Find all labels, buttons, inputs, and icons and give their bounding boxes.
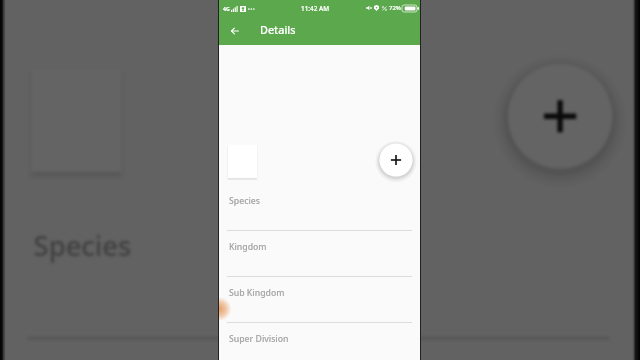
staticText: Super Division [229,333,289,345]
button[interactable]: Add [374,138,418,182]
button[interactable]: Species [219,188,420,234]
button[interactable]: Kingdom [219,234,420,280]
button[interactable]: Kingdom [3,349,635,360]
button[interactable]: Add [491,47,630,186]
staticText: Species [34,227,132,264]
staticText: Details [260,22,296,37]
button[interactable]: Back [223,19,247,43]
staticText: 72% [389,4,401,12]
button[interactable]: Sub Kingdom [219,280,420,326]
button[interactable]: Super Division [219,326,420,360]
staticText: Species [229,195,260,207]
button[interactable]: Species [3,205,635,349]
staticText: 11:42 AM [301,4,330,13]
staticText: Kingdom [229,241,267,253]
staticText: Sub Kingdom [229,287,285,299]
staticText: 4G [223,5,230,12]
